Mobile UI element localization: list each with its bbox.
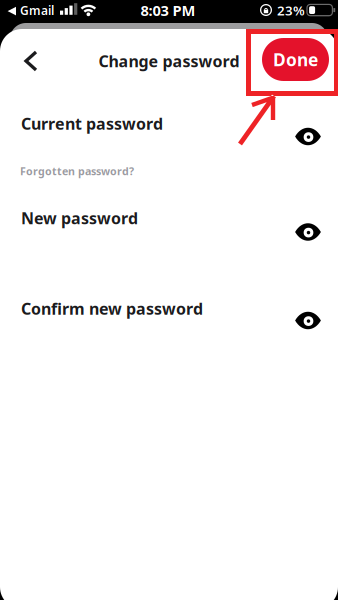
button[interactable]: Forgotten password?: [0, 159, 338, 183]
staticText: 23%: [277, 1, 305, 19]
staticText: Forgotten password?: [20, 164, 134, 178]
staticText: 8:03 PM: [140, 0, 195, 20]
button[interactable]: Back: [20, 38, 64, 84]
staticText: New password: [21, 207, 138, 229]
staticText: Change password: [98, 50, 239, 72]
button[interactable]: Current password: [0, 113, 260, 133]
button[interactable]: New password: [0, 208, 260, 228]
button[interactable]: Done: [262, 38, 329, 81]
button[interactable]: Show password: [286, 303, 330, 337]
staticText: Current password: [21, 113, 163, 134]
button[interactable]: Confirm new password: [0, 298, 260, 318]
staticText: Gmail: [20, 2, 54, 18]
button[interactable]: Show password: [286, 119, 330, 153]
button[interactable]: Show password: [286, 215, 330, 249]
staticText: Done: [273, 48, 318, 71]
staticText: Confirm new password: [21, 298, 203, 319]
